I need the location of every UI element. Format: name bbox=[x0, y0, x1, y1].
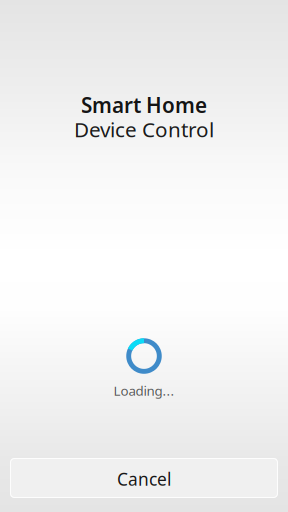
button[interactable]: Cancel bbox=[10, 458, 278, 498]
staticText: Cancel bbox=[117, 467, 171, 491]
staticText: Loading... bbox=[113, 382, 174, 399]
staticText: Smart Home bbox=[81, 91, 207, 119]
staticText: Device Control bbox=[74, 115, 214, 143]
